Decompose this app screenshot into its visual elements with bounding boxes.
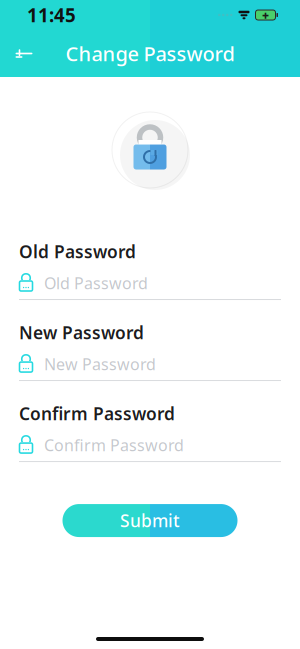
- staticText: +: [262, 7, 269, 23]
- button[interactable]: Old Password: [19, 263, 281, 300]
- staticText: Confirm Password: [44, 434, 184, 456]
- staticText: 11:45: [27, 3, 76, 27]
- staticText: New Password: [19, 321, 144, 344]
- button[interactable]: New Password: [19, 344, 281, 381]
- button[interactable]: Back: [2, 31, 46, 75]
- staticText: Old Password: [19, 240, 136, 263]
- staticText: Change Password: [65, 40, 234, 67]
- button[interactable]: Submit: [62, 504, 237, 537]
- staticText: New Password: [44, 353, 156, 375]
- staticText: Submit: [120, 509, 180, 532]
- staticText: Confirm Password: [19, 402, 175, 425]
- staticText: Old Password: [44, 272, 148, 294]
- button[interactable]: Confirm Password: [19, 425, 281, 462]
